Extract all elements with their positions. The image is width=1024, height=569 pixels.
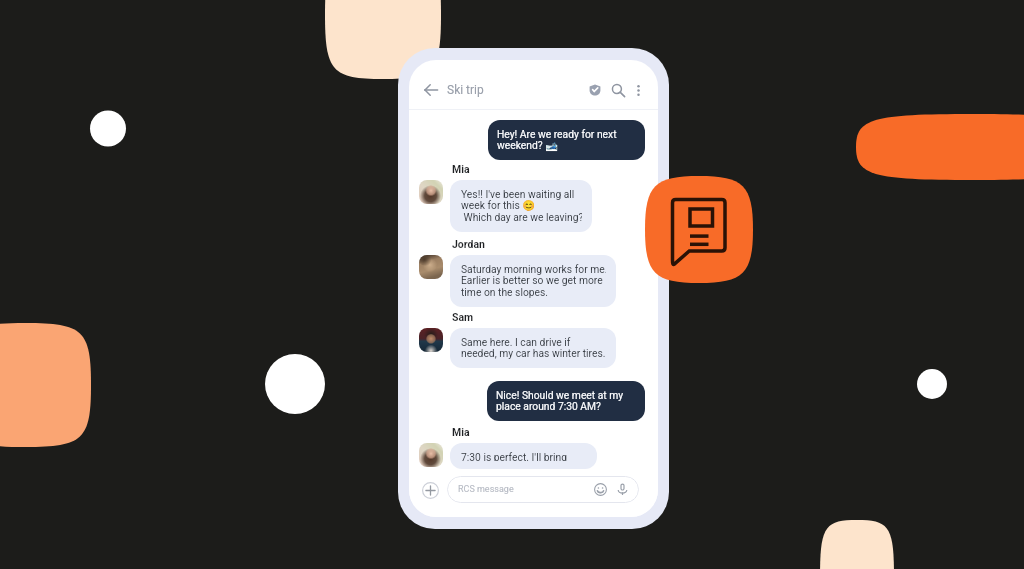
button[interactable]: Nice! Should we meet at my place around …: [487, 381, 645, 421]
staticText: Yes!! I've been waiting all week for thi…: [461, 188, 582, 224]
staticText: Same here. I can drive if needed, my car…: [461, 336, 606, 360]
button[interactable]: 7:30 is perfect. I'll bring snacks for t…: [450, 443, 597, 469]
button[interactable]: Yes!! I've been waiting all week for thi…: [450, 180, 592, 232]
button[interactable]: Hey! Are we ready for next weekend? 🎿: [488, 120, 645, 160]
button[interactable]: Add attachment: [419, 479, 441, 501]
staticText: Saturday morning works for me. Earlier i…: [461, 263, 606, 299]
button[interactable]: Contact photo: [419, 180, 443, 204]
button[interactable]: Verified business: [584, 79, 605, 100]
button[interactable]: Search: [607, 79, 629, 101]
button[interactable]: Google Messages: [645, 176, 753, 283]
staticText: Jordan: [452, 238, 485, 250]
button[interactable]: Contact photo: [419, 443, 443, 467]
button[interactable]: Emoji: [593, 482, 608, 497]
button[interactable]: Contact photo: [419, 328, 443, 352]
staticText: 7:30 is perfect. I'll bring snacks for t…: [461, 451, 567, 461]
staticText: Hey! Are we ready for next weekend? 🎿: [497, 128, 617, 152]
staticText: Mia: [452, 426, 470, 438]
button[interactable]: Contact photo: [419, 255, 443, 279]
staticText: Sam: [452, 311, 474, 323]
staticText: Ski trip: [447, 83, 484, 97]
button[interactable]: Back: [420, 79, 442, 101]
button[interactable]: Voice message: [615, 482, 630, 497]
button[interactable]: More options: [629, 81, 647, 99]
staticText: RCS message: [458, 484, 514, 495]
staticText: Nice! Should we meet at my place around …: [496, 389, 624, 413]
button[interactable]: Same here. I can drive if needed, my car…: [450, 328, 616, 368]
staticText: Mia: [452, 163, 470, 175]
button[interactable]: RCS message: [447, 476, 639, 503]
button[interactable]: Saturday morning works for me. Earlier i…: [450, 255, 616, 307]
